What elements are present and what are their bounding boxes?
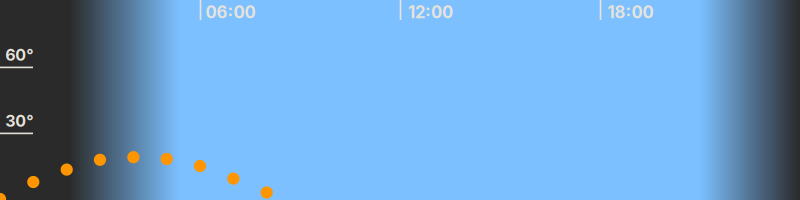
staticText: 30° [5, 111, 33, 131]
staticText: 06:00 [205, 2, 255, 22]
staticText: 60° [5, 45, 33, 65]
staticText: 12:00 [408, 2, 453, 22]
staticText: 18:00 [607, 2, 653, 22]
